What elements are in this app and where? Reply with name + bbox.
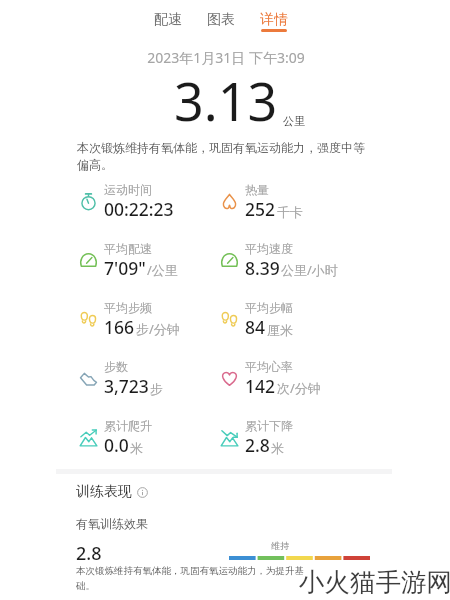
staticText: 有氧训练效果 [76,516,148,531]
staticText: 步/分钟 [136,320,180,338]
staticText: 训练表现 [76,483,132,501]
staticText: 3.13 [174,65,278,136]
staticText: 84 [245,315,266,339]
other: 信息 [137,487,148,498]
staticText: 小火猫手游网 [299,566,450,598]
staticText: /公里 [147,261,178,279]
button[interactable]: 详情 [254,9,294,34]
button[interactable]: 平均配速 [78,241,218,280]
staticText: 166 [104,315,135,339]
button[interactable]: 平均步幅 [219,300,359,339]
staticText: 142 [245,374,276,398]
button[interactable]: 平均速度 [219,241,359,280]
button[interactable]: 运动时间 [78,182,218,221]
staticText: 千卡 [277,204,303,220]
staticText: 米 [271,440,284,456]
staticText: 厘米 [267,322,293,338]
staticText: 3,723 [104,374,149,398]
staticText: 2.8 [245,433,270,457]
button[interactable]: 步数 [78,359,218,398]
staticText: 累计爬升 [104,418,152,433]
staticText: 次/分钟 [277,379,321,397]
staticText: 公里/小时 [281,261,338,279]
staticText: 步数 [104,359,128,374]
staticText: 平均步幅 [245,300,293,315]
button[interactable]: 累计爬升 [78,418,218,457]
staticText: 步 [150,381,163,397]
button[interactable]: 训练表现 [76,483,148,501]
button[interactable]: 配速 [148,9,188,34]
staticText: 平均速度 [245,241,293,256]
button[interactable]: 平均步频 [78,300,218,339]
staticText: 0.0 [104,433,129,457]
staticText: 8.39 [245,256,280,280]
button[interactable]: 累计下降 [219,418,359,457]
staticText: 米 [130,440,143,456]
staticText: 2.8 [76,541,102,566]
staticText: 运动时间 [104,182,152,197]
staticText: 累计下降 [245,418,293,433]
staticText: 详情 [260,11,288,29]
staticText: 图表 [207,11,235,29]
staticText: 公里 [283,114,305,128]
button[interactable]: 图表 [201,9,241,34]
staticText: 252 [245,197,276,221]
button[interactable]: 平均心率 [219,359,359,398]
staticText: 平均步频 [104,300,152,315]
staticText: 平均配速 [104,241,152,256]
button[interactable]: 热量 [219,182,359,221]
staticText: 00:22:23 [104,197,174,221]
staticText: 7'09" [104,256,146,280]
staticText: 平均心率 [245,359,293,374]
staticText: 配速 [154,11,182,29]
staticText: 本次锻炼维持有氧体能，巩固有氧运动能力，为提升基础。 [76,565,308,592]
staticText: 维持 [271,540,289,551]
staticText: 2023年1月31日 下午3:09 [1,48,450,67]
staticText: 本次锻炼维持有氧体能，巩固有氧运动能力，强度中等偏高。 [77,140,371,172]
staticText: 热量 [245,182,269,197]
